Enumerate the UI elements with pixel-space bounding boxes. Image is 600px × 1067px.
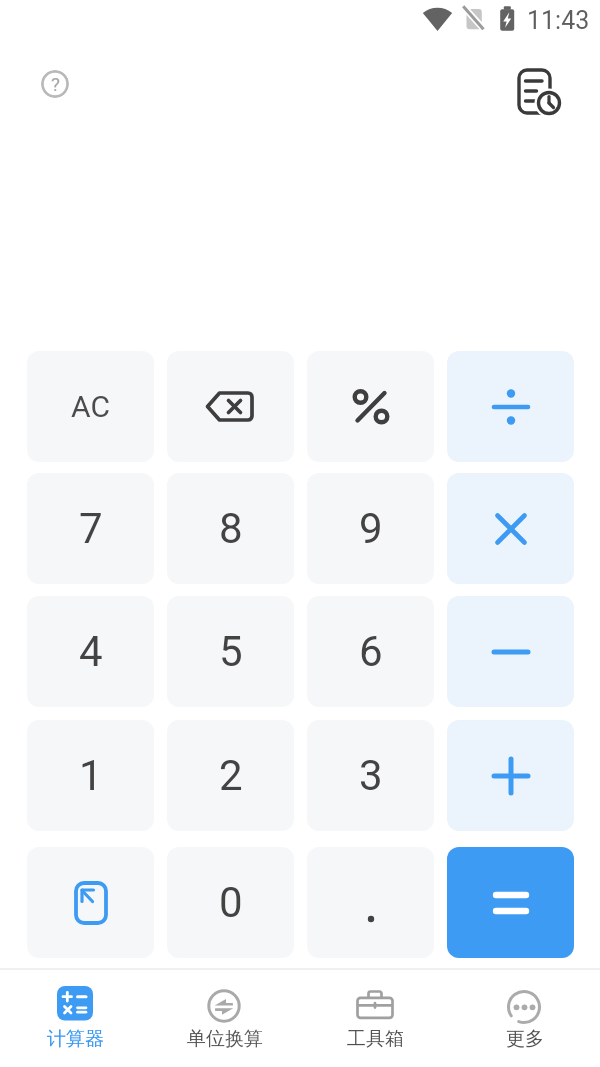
staticText: AC <box>71 389 110 424</box>
button[interactable]: 更多 <box>450 970 600 1067</box>
button[interactable]: AC <box>27 351 154 462</box>
button[interactable]: 8 <box>167 473 294 584</box>
staticText: ? <box>51 73 60 95</box>
button[interactable] <box>447 596 574 707</box>
staticText: 11:43 <box>527 6 590 35</box>
button[interactable] <box>27 847 154 958</box>
button[interactable]: 计算器 <box>0 970 150 1067</box>
staticText: 7 <box>79 504 103 553</box>
button[interactable] <box>447 473 574 584</box>
button[interactable]: 6 <box>307 596 434 707</box>
staticText: 5 <box>219 627 243 676</box>
button[interactable]: 7 <box>27 473 154 584</box>
button[interactable] <box>512 63 564 117</box>
staticText: 4 <box>79 627 103 676</box>
staticText: 9 <box>359 504 383 553</box>
button[interactable] <box>447 720 574 831</box>
button[interactable]: 1 <box>27 720 154 831</box>
button[interactable] <box>447 351 574 462</box>
button[interactable]: 2 <box>167 720 294 831</box>
button[interactable] <box>307 351 434 462</box>
button[interactable] <box>307 847 434 958</box>
staticText: 2 <box>219 751 243 800</box>
staticText: 8 <box>219 504 243 553</box>
staticText: 6 <box>359 627 383 676</box>
staticText: 单位换算 <box>187 1027 263 1051</box>
button[interactable]: 3 <box>307 720 434 831</box>
button[interactable]: 0 <box>167 847 294 958</box>
button[interactable]: ? <box>41 70 69 98</box>
button[interactable]: 4 <box>27 596 154 707</box>
button[interactable] <box>447 847 574 958</box>
button[interactable]: 5 <box>167 596 294 707</box>
button[interactable]: 工具箱 <box>300 970 450 1067</box>
staticText: 工具箱 <box>347 1027 404 1051</box>
staticText: 更多 <box>506 1027 544 1051</box>
button[interactable]: 9 <box>307 473 434 584</box>
button[interactable] <box>167 351 294 462</box>
staticText: 3 <box>359 751 383 800</box>
staticText: 0 <box>219 878 243 927</box>
staticText: 计算器 <box>47 1027 104 1051</box>
staticText: 1 <box>79 751 103 800</box>
button[interactable]: 单位换算 <box>150 970 300 1067</box>
